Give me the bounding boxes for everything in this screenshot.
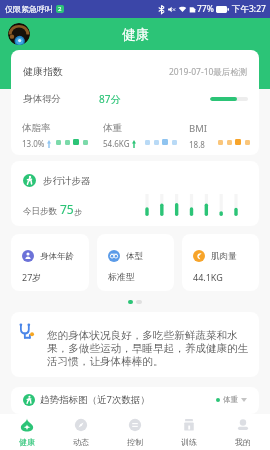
button[interactable]: 体型 (97, 234, 174, 291)
button[interactable]: Profile (8, 23, 30, 45)
staticText: 今日步数 (23, 206, 57, 217)
staticText: 身体得分 (23, 93, 61, 105)
button[interactable]: 健康指数 (11, 50, 259, 155)
button[interactable]: 肌肉量 (182, 234, 259, 291)
button[interactable]: 您的身体状况良好，多吃些新鲜蔬菜和水果，多做些运动，早睡早起，养成健康的生活习惯… (11, 312, 259, 377)
staticText: 18.8 (189, 139, 205, 150)
staticText: 标准型 (108, 271, 135, 282)
staticText: 动态 (73, 437, 89, 447)
staticText: 13.0% (22, 138, 45, 149)
staticText: 77% (197, 3, 214, 15)
button[interactable]: 健康 (0, 414, 54, 450)
staticText: 我的 (235, 437, 251, 447)
button[interactable]: 我的 (216, 414, 270, 450)
staticText: 您的身体状况良好，多吃些新鲜蔬菜和水果，多做些运动，早睡早起，养成健康的生活习惯… (47, 329, 252, 368)
staticText: BMI (189, 122, 208, 135)
staticText: 健康 (122, 26, 149, 43)
staticText: 步 (74, 207, 82, 217)
staticText: 2019-07-10最后检测 (169, 66, 248, 78)
button[interactable]: 动态 (54, 414, 108, 450)
staticText: 2 (58, 5, 62, 13)
button[interactable]: 身体年龄 (11, 234, 89, 291)
staticText: 仅限紧急呼叫 (5, 4, 53, 14)
staticText: 27岁 (22, 271, 42, 283)
staticText: 体重 (103, 122, 122, 134)
staticText: 体脂率 (22, 122, 51, 134)
staticText: 体重 (223, 395, 238, 404)
button[interactable]: 控制 (108, 414, 162, 450)
staticText: 体型 (126, 251, 143, 262)
staticText: 健康指数 (23, 65, 63, 78)
button[interactable]: 训练 (162, 414, 216, 450)
staticText: 健康 (19, 437, 35, 447)
staticText: 控制 (127, 437, 143, 447)
staticText: 步行计步器 (43, 175, 91, 187)
staticText: 训练 (181, 437, 197, 447)
staticText: 肌肉量 (211, 251, 237, 262)
staticText: 44.1KG (193, 271, 223, 283)
staticText: 54.6KG (103, 138, 130, 149)
staticText: 趋势指标图（近7次数据） (40, 393, 150, 406)
button[interactable]: 趋势指标图（近7次数据） (11, 387, 259, 414)
staticText: 75 (60, 201, 74, 217)
staticText: 87分 (99, 92, 121, 106)
staticText: 下午3:27 (232, 3, 266, 15)
staticText: 身体年龄 (40, 251, 74, 262)
button[interactable]: 步行计步器 (11, 161, 259, 226)
